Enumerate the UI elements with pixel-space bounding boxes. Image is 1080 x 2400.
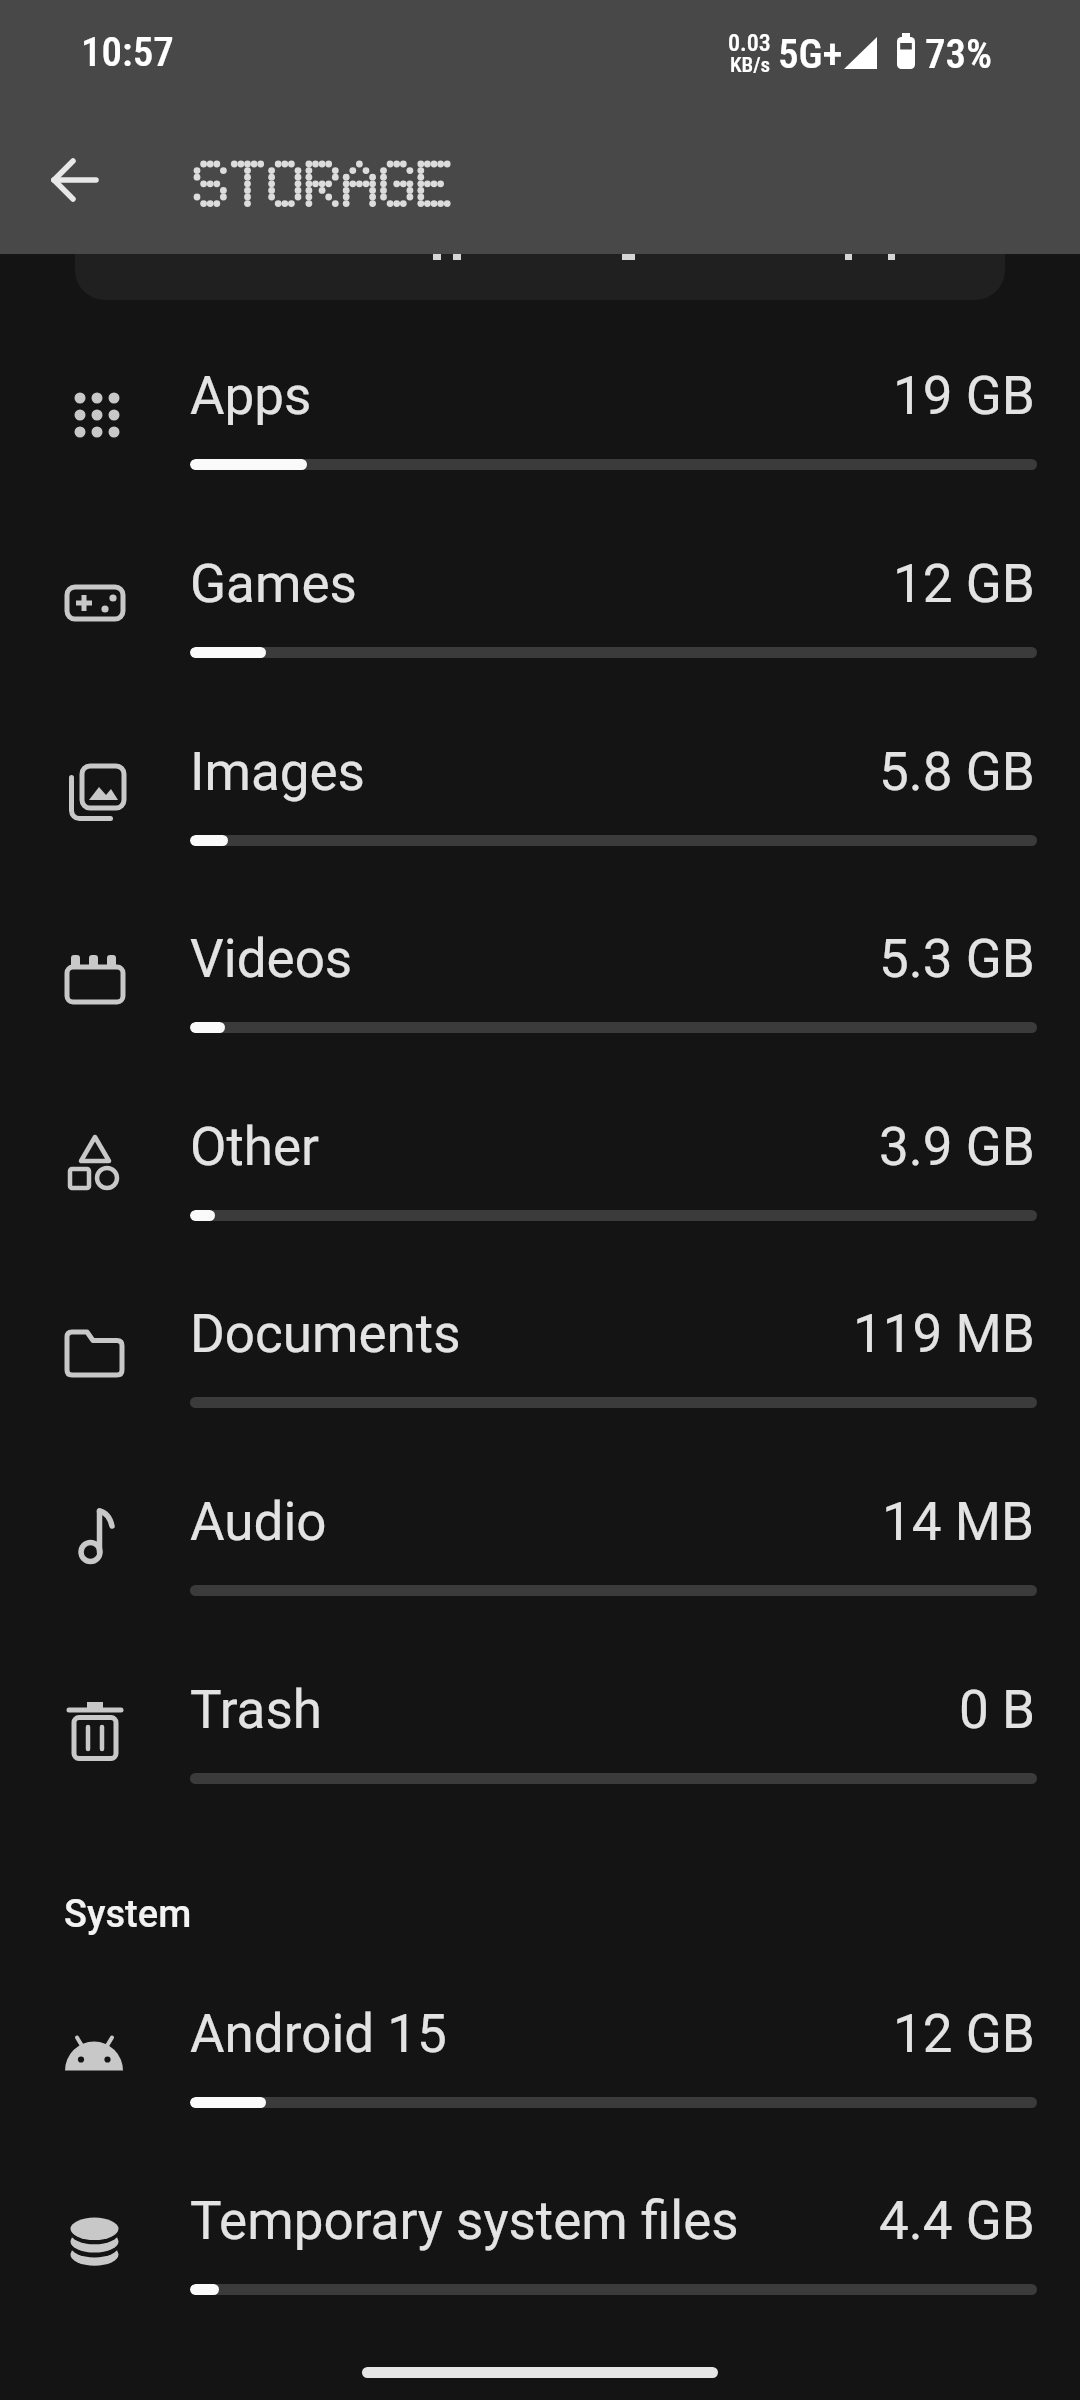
button[interactable]: Videos [0, 868, 1080, 1056]
button[interactable]: Audio [0, 1431, 1080, 1619]
button[interactable]: Other [0, 1056, 1080, 1244]
button[interactable]: Android 15 [0, 1943, 1080, 2131]
button[interactable]: Trash [0, 1619, 1080, 1807]
button[interactable]: Temporary system files [0, 2130, 1080, 2318]
staticText: 5.8 GB [879, 741, 1035, 803]
staticText: System [64, 1892, 192, 1937]
staticText: Temporary system files [190, 2190, 739, 2252]
staticText: Android 15 [190, 2003, 447, 2065]
staticText: Videos [190, 928, 353, 990]
button[interactable]: Documents [0, 1243, 1080, 1431]
staticText: 14 MB [882, 1491, 1035, 1553]
staticText: 10:57 [81, 28, 174, 76]
staticText: Images [190, 741, 365, 803]
button[interactable] [31, 136, 119, 224]
button[interactable]: Games [0, 493, 1080, 681]
staticText: 12 GB [893, 2003, 1035, 2065]
staticText: 5.3 GB [879, 928, 1035, 990]
staticText: 4.4 GB [879, 2190, 1035, 2252]
staticText: Audio [190, 1491, 327, 1553]
button[interactable]: Apps [0, 305, 1080, 493]
staticText: 12 GB [893, 553, 1035, 615]
staticText: KB/s [730, 53, 771, 78]
staticText: 0.03 [728, 29, 771, 57]
staticText: 3.9 GB [879, 1116, 1035, 1178]
staticText: Other [190, 1116, 320, 1178]
staticText: 73% [925, 30, 993, 78]
staticText: 0 B [959, 1679, 1035, 1741]
staticText: Trash [190, 1679, 322, 1741]
button[interactable]: Images [0, 681, 1080, 869]
staticText: 19 GB [893, 365, 1035, 427]
staticText: Games [190, 553, 357, 615]
staticText: 119 MB [853, 1303, 1035, 1365]
staticText: Documents [190, 1303, 461, 1365]
staticText: 5G+ [778, 30, 843, 78]
staticText: Apps [190, 365, 312, 427]
